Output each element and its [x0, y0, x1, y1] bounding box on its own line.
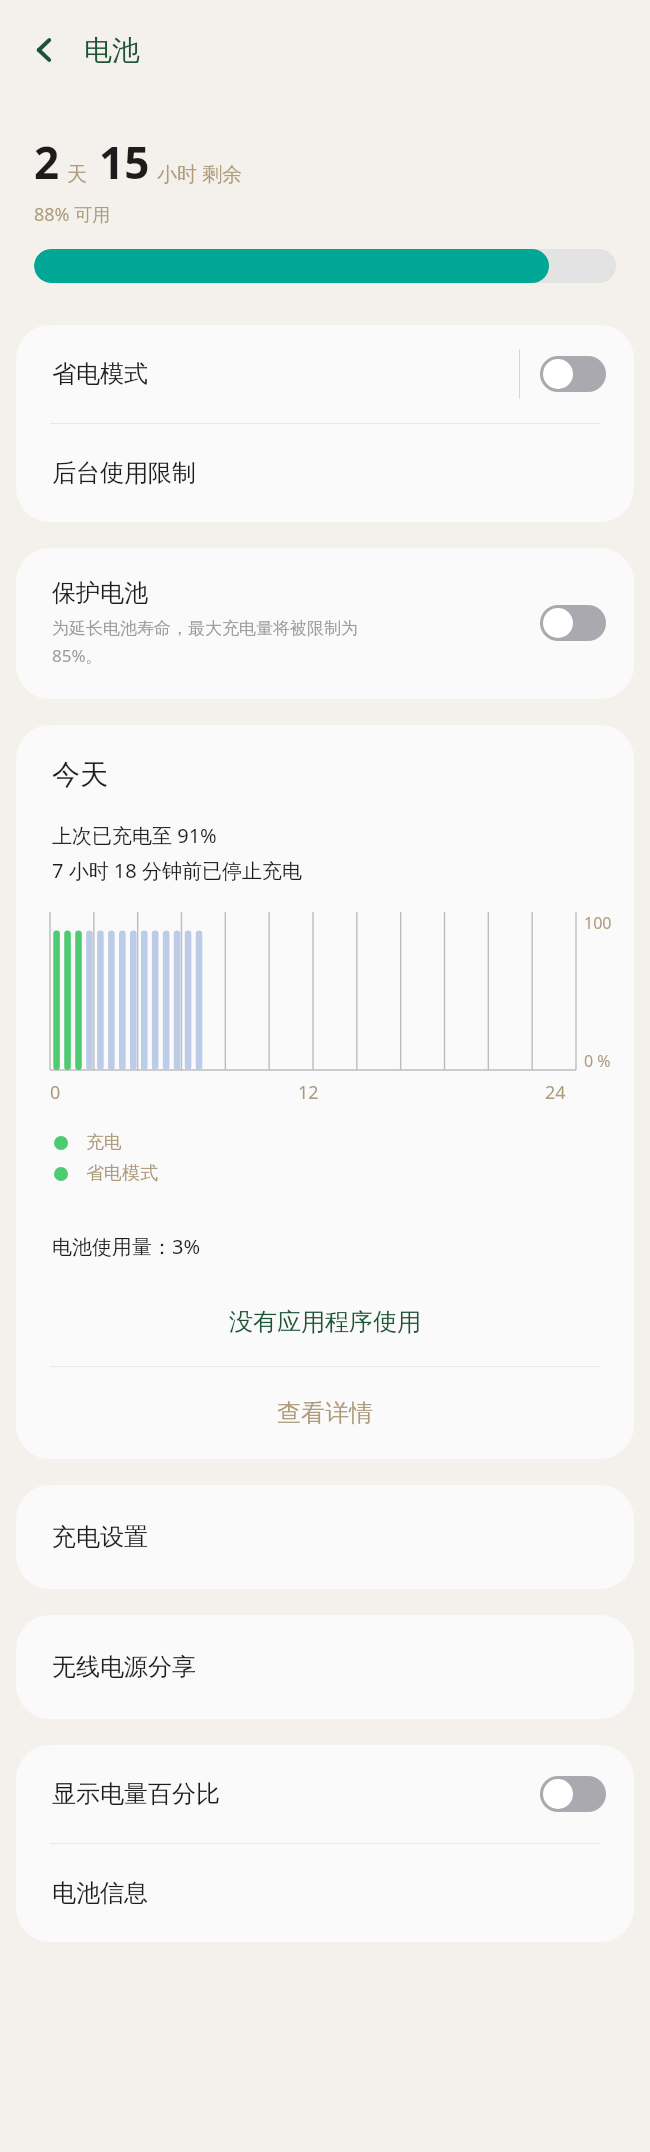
button[interactable]: 后台使用限制: [16, 424, 634, 522]
staticText: 显示电量百分比: [52, 1779, 220, 1809]
staticText: 12: [298, 1080, 319, 1105]
button[interactable]: 返回: [18, 24, 70, 76]
staticText: 今天: [52, 757, 108, 792]
staticText: 查看详情: [277, 1398, 373, 1428]
staticText: 省电模式: [52, 359, 148, 389]
staticText: 没有应用程序使用: [229, 1307, 421, 1337]
button[interactable]: 电池信息: [16, 1844, 634, 1942]
button[interactable]: 充电设置: [16, 1485, 634, 1589]
staticText: 15: [99, 132, 150, 192]
staticText: 电池: [84, 33, 140, 68]
staticText: 保护电池: [52, 578, 148, 608]
staticText: 后台使用限制: [52, 458, 196, 488]
staticText: 24: [545, 1080, 566, 1105]
button[interactable]: 省电模式: [16, 325, 634, 423]
button[interactable]: 查看详情: [16, 1367, 634, 1459]
button[interactable]: 无线电源分享: [16, 1615, 634, 1719]
staticText: 88% 可用: [34, 202, 111, 227]
staticText: 7 小时 18 分钟前已停止充电: [52, 857, 302, 884]
staticText: 小时 剩余: [157, 160, 243, 187]
staticText: 0 %: [584, 1050, 611, 1072]
staticText: 充电设置: [52, 1522, 148, 1552]
button[interactable]: 开关: [540, 1776, 606, 1812]
staticText: 0: [50, 1080, 61, 1105]
button[interactable]: 开关: [540, 605, 606, 641]
staticText: 100: [584, 912, 612, 934]
staticText: 天: [67, 162, 87, 187]
staticText: 电池使用量：3%: [52, 1233, 201, 1260]
staticText: 电池信息: [52, 1878, 148, 1908]
button[interactable]: 开关: [540, 356, 606, 392]
staticText: 省电模式: [86, 1162, 158, 1185]
staticText: 上次已充电至 91%: [52, 822, 217, 849]
button[interactable]: 保护电池: [16, 548, 634, 699]
staticText: 无线电源分享: [52, 1652, 196, 1682]
staticText: 2: [34, 132, 60, 192]
button[interactable]: 显示电量百分比: [16, 1745, 634, 1843]
staticText: 充电: [86, 1131, 122, 1154]
staticText: 为延长电池寿命，最大充电量将被限制为 85%。: [52, 618, 358, 667]
